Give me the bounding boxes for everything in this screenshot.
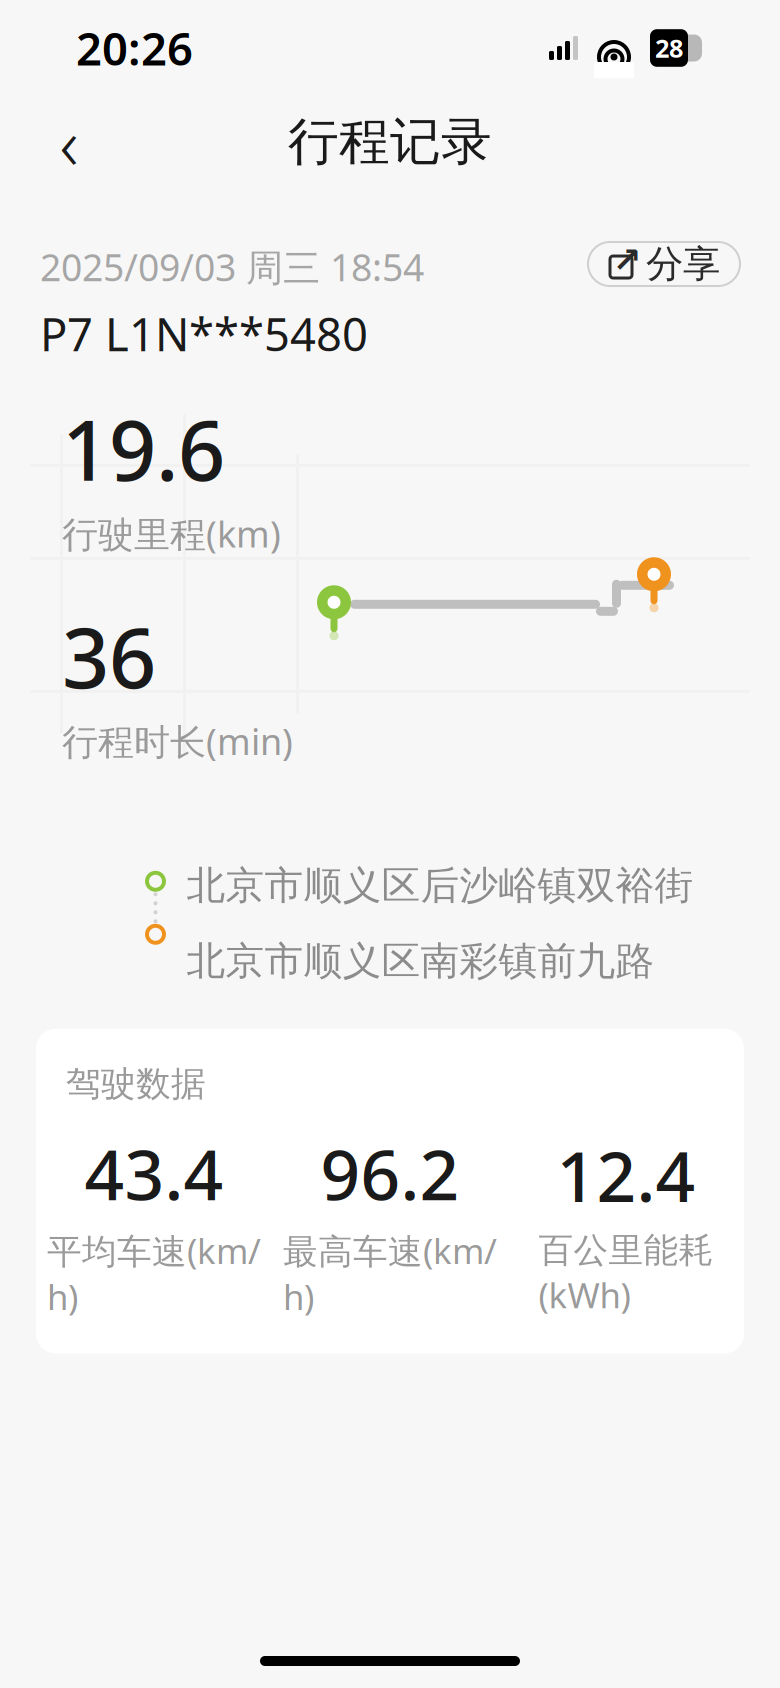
staticText: 20:26 [76,18,193,78]
button[interactable]: ↗ [588,242,740,286]
staticText: 28 [655,31,683,65]
staticText: ‹ [59,94,78,190]
button[interactable]: Back [32,105,106,179]
staticText: 43.4 [84,1127,223,1219]
staticText: 行驶里程(km) [62,510,281,557]
staticText: 最高车速(km/h) [283,1227,497,1319]
staticText: 分享 [646,241,720,287]
staticText: 2025/09/03 周三 18:54 [40,242,424,292]
staticText: P7 L1N***5480 [40,304,368,364]
staticText: 36 [62,601,156,711]
staticText: 12.4 [556,1129,695,1221]
staticText: ↗ [612,240,641,280]
staticText: 北京市顺义区后沙峪镇双裕街 [186,862,693,909]
staticText: 19.6 [62,394,225,504]
staticText: 行程记录 [288,111,492,173]
staticText: 96.2 [320,1127,459,1219]
staticText: 驾驶数据 [66,1063,206,1105]
staticText: 百公里能耗(kWh) [538,1229,713,1318]
staticText: 行程时长(min) [62,717,293,765]
staticText: 平均车速(km/h) [47,1227,261,1319]
staticText: 北京市顺义区南彩镇前九路 [186,937,654,985]
